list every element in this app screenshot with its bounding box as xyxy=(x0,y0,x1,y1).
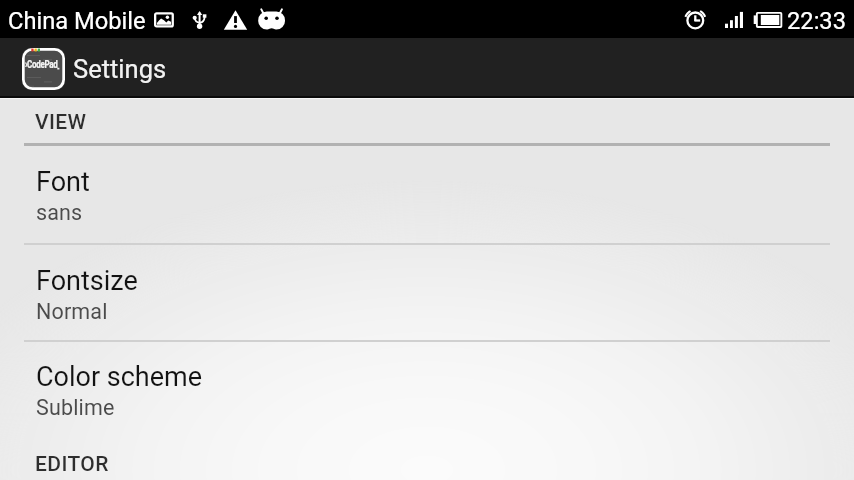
staticText: 22:33 xyxy=(787,7,846,35)
staticText: sans xyxy=(36,200,83,225)
staticText: China Mobile xyxy=(8,7,146,35)
staticText: Font xyxy=(36,166,90,198)
staticText: VIEW xyxy=(35,110,87,135)
staticText: Sublime xyxy=(36,395,115,420)
staticText: Fontsize xyxy=(36,265,138,297)
staticText: Color scheme xyxy=(36,361,203,393)
staticText: Settings xyxy=(73,54,167,84)
button[interactable]: Fontsize xyxy=(0,245,854,341)
button[interactable]: Font xyxy=(0,146,854,242)
button[interactable]: Color scheme xyxy=(0,341,854,437)
button[interactable]: Navigate up, CodePad Settings xyxy=(14,38,73,98)
staticText: EDITOR xyxy=(35,452,109,477)
staticText: Normal xyxy=(36,299,108,324)
staticText: ›CodePad_ xyxy=(25,59,59,71)
